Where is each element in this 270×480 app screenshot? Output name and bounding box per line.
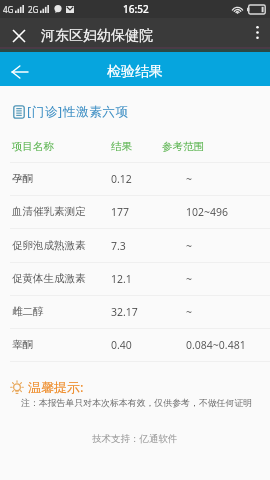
staticText: 16:52 <box>123 2 149 16</box>
staticText: 温馨提示: <box>28 378 84 396</box>
button[interactable]: 血清催乳素测定 <box>0 200 270 232</box>
staticText: 4G <box>3 4 14 15</box>
staticText: 项目名称 <box>12 140 54 153</box>
button[interactable]: 促卵泡成熟激素 <box>0 234 270 266</box>
button[interactable]: 睾酮 <box>0 333 270 365</box>
staticText: 177 <box>111 205 130 219</box>
staticText: 参考范围 <box>162 140 204 153</box>
staticText: 7.3 <box>111 239 126 253</box>
staticText: 雌二醇 <box>12 305 44 318</box>
staticText: 2G <box>28 4 39 15</box>
staticText: 32.17 <box>111 305 138 319</box>
staticText: 12.1 <box>111 272 132 286</box>
staticText: 睾酮 <box>12 338 33 351</box>
staticText: 结果 <box>111 140 132 153</box>
button[interactable]: 促黄体生成激素 <box>0 267 270 299</box>
staticText: 血清催乳素测定 <box>12 205 86 218</box>
staticText: ~ <box>186 172 193 186</box>
staticText: ~ <box>186 239 193 253</box>
staticText: ~ <box>186 272 193 286</box>
button[interactable]: 雌二醇 <box>0 300 270 332</box>
button[interactable]: Back <box>0 55 38 89</box>
staticText: 检验结果 <box>107 63 163 81</box>
staticText: 0.12 <box>111 172 132 186</box>
staticText: 102~496 <box>186 205 229 219</box>
button[interactable]: More options <box>244 18 270 47</box>
staticText: 孕酮 <box>12 172 33 185</box>
staticText: 促卵泡成熟激素 <box>12 239 86 252</box>
staticText: ~ <box>186 305 193 319</box>
staticText: 促黄体生成激素 <box>12 272 86 285</box>
button[interactable]: 孕酮 <box>0 167 270 199</box>
staticText: 0.084~0.481 <box>186 338 246 352</box>
staticText: 注：本报告单只对本次标本有效，仅供参考，不做任何证明 <box>21 397 253 408</box>
button[interactable]: Close <box>0 18 31 47</box>
staticText: 河东区妇幼保健院 <box>41 27 153 45</box>
staticText: 0.40 <box>111 338 132 352</box>
button[interactable]: 项目名称 <box>0 135 270 167</box>
staticText: [门诊]性激素六项 <box>27 103 129 120</box>
staticText: 技术支持：亿通软件 <box>92 433 178 445</box>
